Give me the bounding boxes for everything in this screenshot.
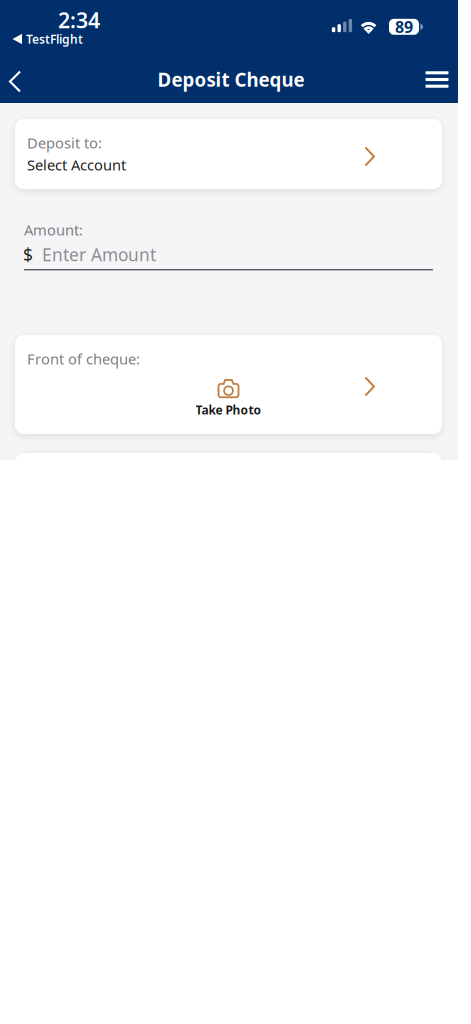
staticText: Deposit to: <box>27 133 102 152</box>
staticText: Take Photo <box>195 402 261 418</box>
staticText: TestFlight <box>26 31 83 47</box>
button[interactable]: Front of cheque: <box>15 335 442 434</box>
button[interactable]: Menu <box>415 56 459 103</box>
staticText: 89 <box>395 16 413 37</box>
staticText: 2:34 <box>58 6 100 34</box>
button[interactable]: Back <box>0 58 30 105</box>
staticText: Front of cheque: <box>27 349 140 368</box>
staticText: $ <box>23 243 33 266</box>
staticText: Select Account <box>27 155 126 174</box>
staticText: Enter Amount <box>42 243 156 266</box>
button[interactable]: Deposit to: <box>15 119 442 189</box>
staticText: Amount: <box>24 220 83 239</box>
staticText: Deposit Cheque <box>157 67 304 92</box>
